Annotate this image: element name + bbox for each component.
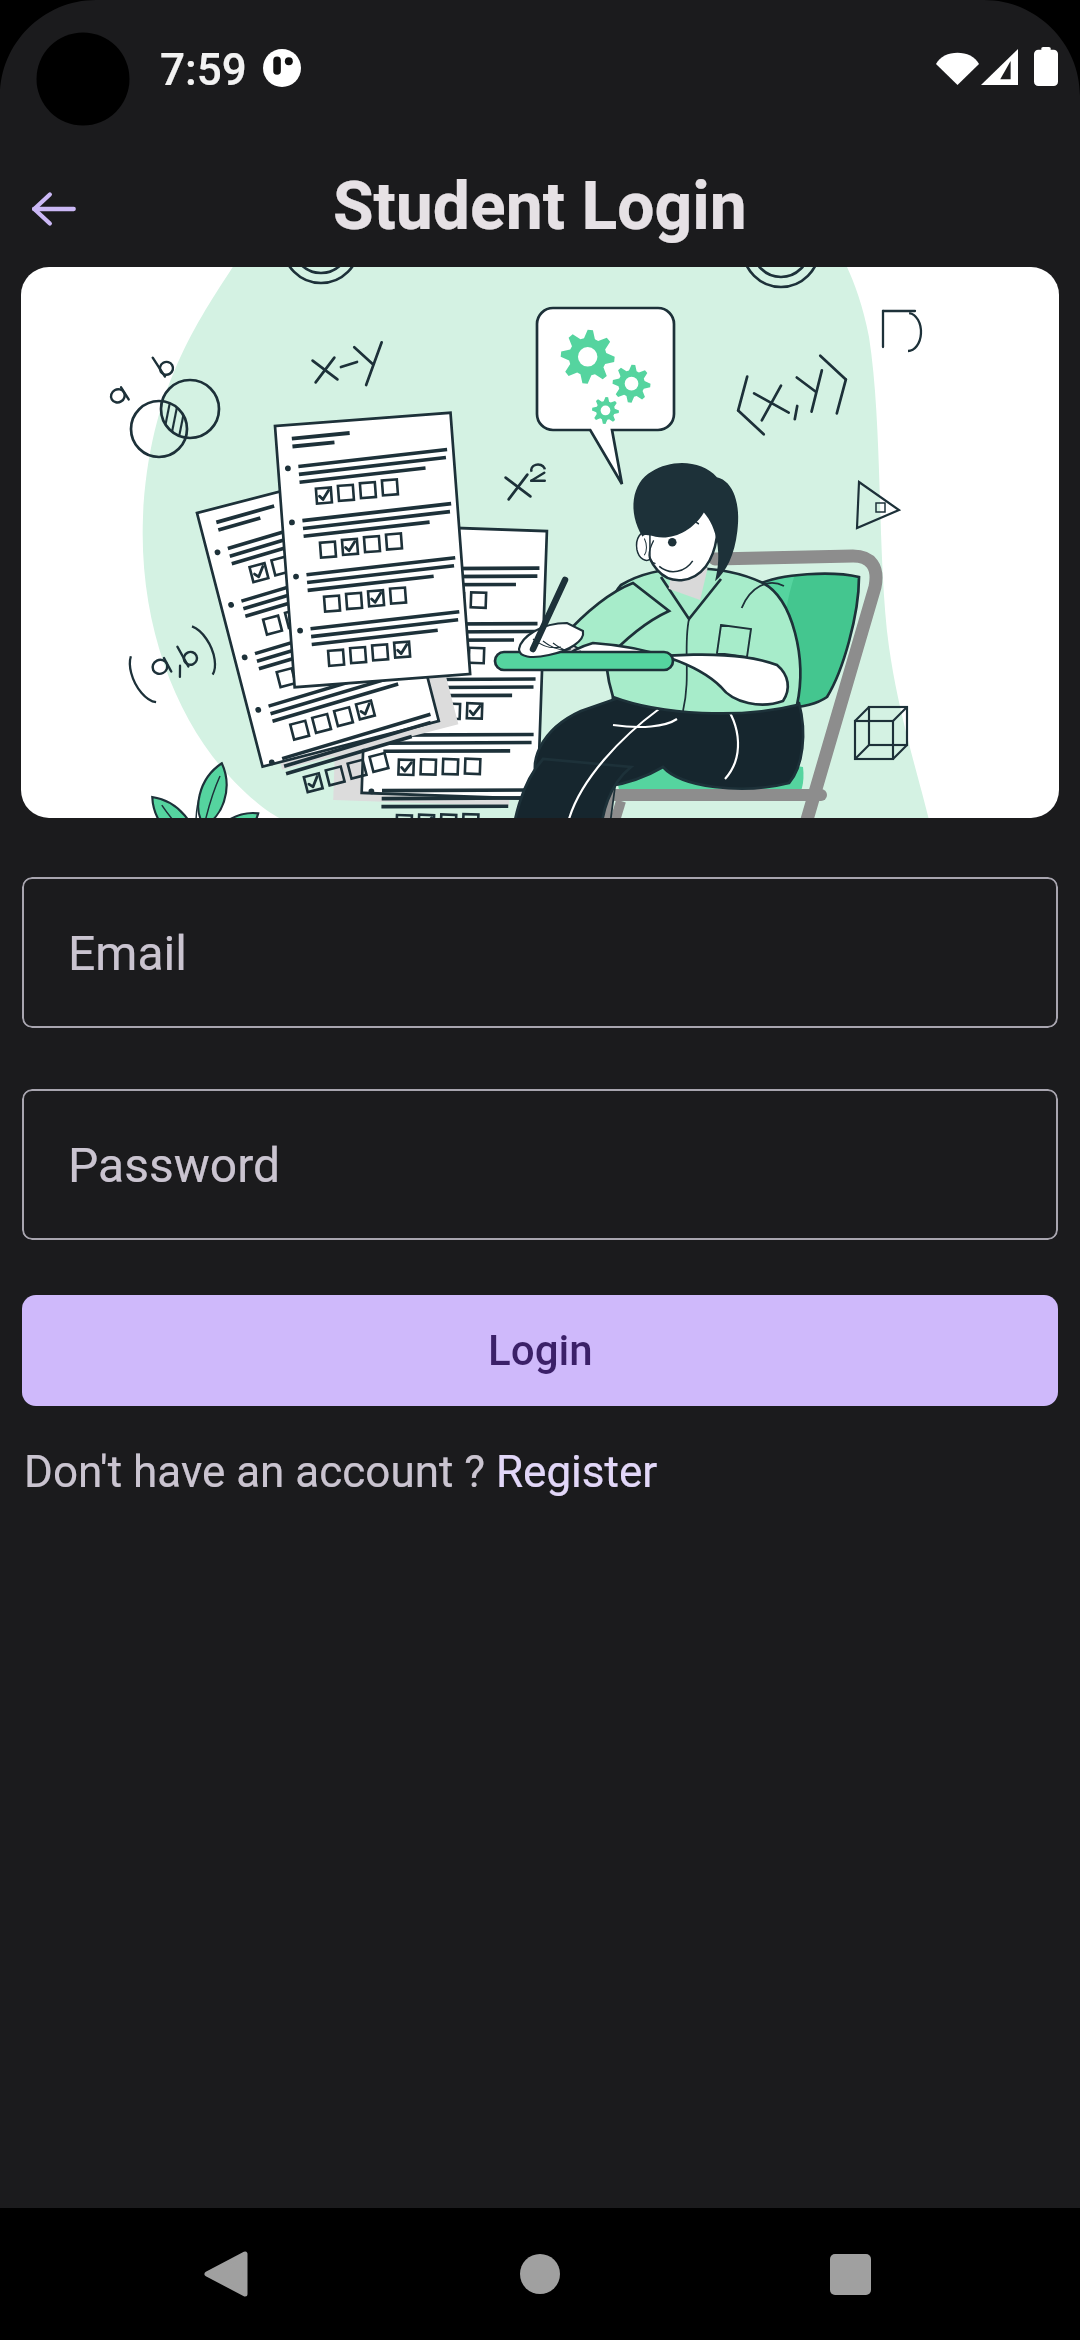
staticText: 7:59 [160, 44, 247, 96]
button[interactable]: Back [18, 173, 90, 245]
button[interactable]: Home [474, 2208, 606, 2340]
staticText: Login [488, 1326, 593, 1375]
button[interactable]: Password [22, 1089, 1058, 1240]
button[interactable]: Don't have an account ? Register [24, 1446, 658, 1498]
button[interactable]: Recent apps [784, 2208, 916, 2340]
button[interactable]: Login [22, 1295, 1058, 1406]
button[interactable]: Navigate back [160, 2208, 292, 2340]
staticText: Student Login [333, 168, 747, 245]
staticText: Password [68, 1137, 281, 1193]
staticText: Email [68, 925, 187, 981]
button[interactable]: Email [22, 877, 1058, 1028]
